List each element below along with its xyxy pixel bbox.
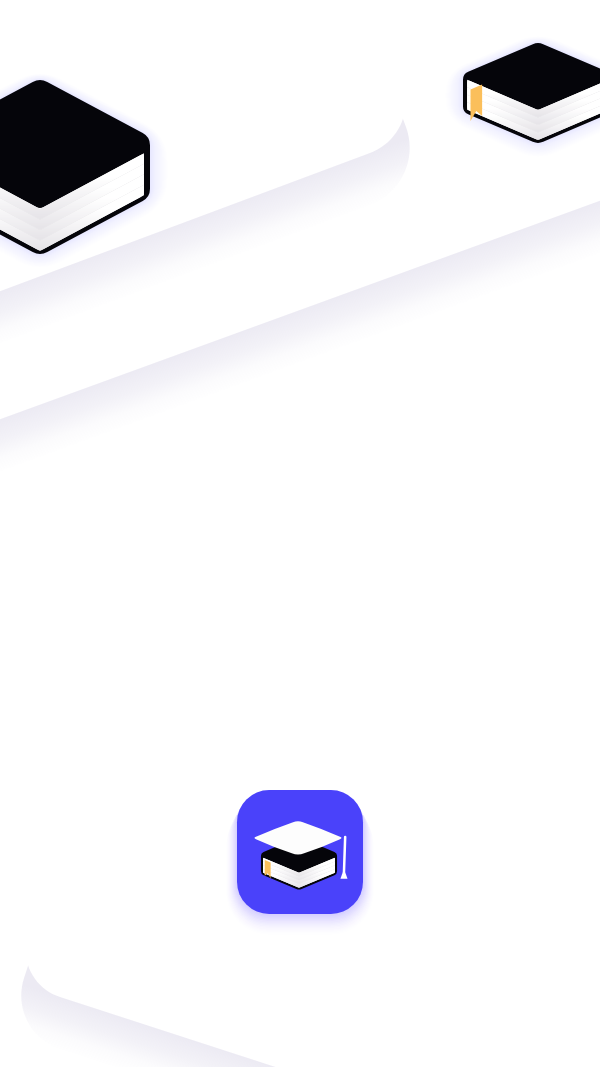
button[interactable]: Graduation cap app logo bbox=[237, 790, 363, 914]
